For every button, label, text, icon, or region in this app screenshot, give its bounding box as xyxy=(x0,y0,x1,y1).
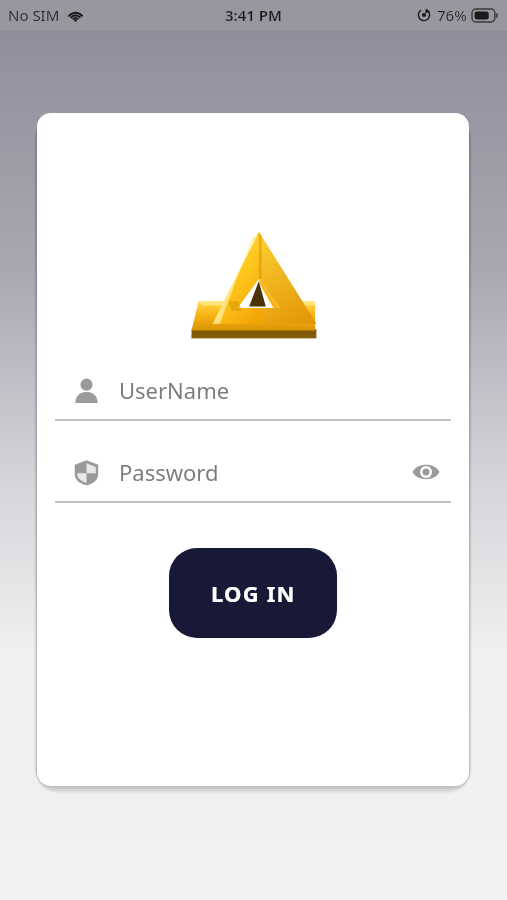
other: User xyxy=(73,377,100,404)
button[interactable]: LOG IN xyxy=(169,548,337,638)
staticText: Password xyxy=(119,457,219,487)
button[interactable]: User xyxy=(37,363,469,417)
staticText: No SIM xyxy=(8,5,60,25)
staticText: 76% xyxy=(437,5,467,25)
button[interactable]: Show password xyxy=(409,455,443,489)
other: Password xyxy=(73,459,100,486)
staticText: UserName xyxy=(119,375,230,405)
button[interactable]: Password xyxy=(37,445,469,499)
staticText: LOG IN xyxy=(211,578,296,608)
staticText: 3:41 PM xyxy=(225,5,282,25)
